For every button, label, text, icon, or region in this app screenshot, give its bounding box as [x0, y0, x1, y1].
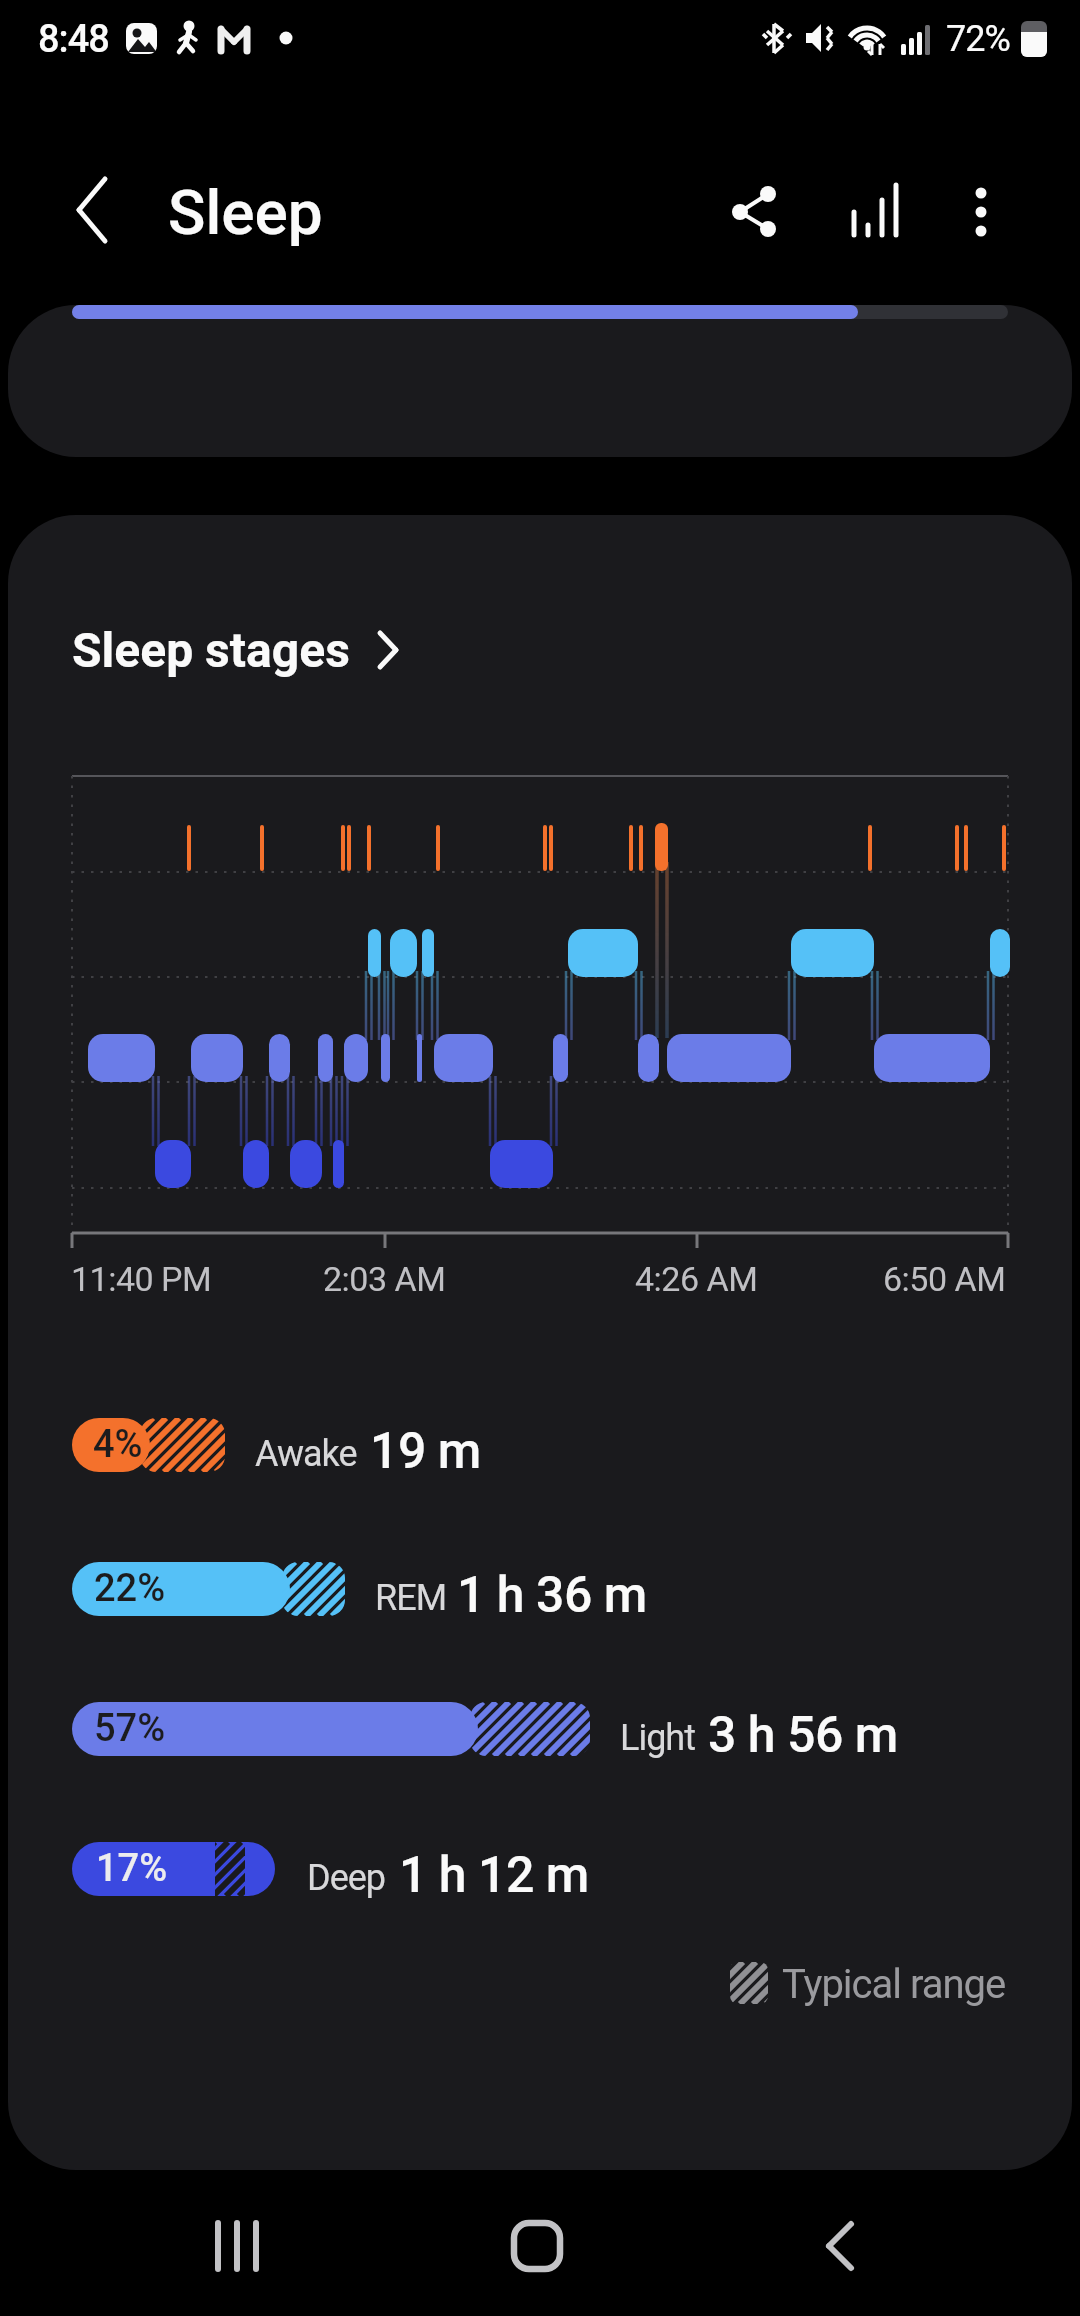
staticText: 11:40 PM — [71, 1259, 212, 1299]
button[interactable] — [170, 2196, 300, 2296]
button[interactable] — [472, 2196, 602, 2296]
staticText: 6:50 AM — [883, 1259, 1006, 1299]
staticText: 1 h 36 m — [457, 1566, 647, 1625]
button[interactable] — [8, 305, 1072, 457]
staticText: 1 h 12 m — [399, 1846, 589, 1905]
button[interactable] — [835, 170, 915, 250]
staticText: 17% — [96, 1846, 168, 1891]
staticText: 3 h 56 m — [708, 1706, 898, 1765]
button[interactable] — [945, 165, 1015, 255]
button[interactable] — [715, 170, 795, 250]
staticText: 72% — [946, 18, 1010, 60]
staticText: 57% — [94, 1706, 166, 1751]
staticText: 4:26 AM — [635, 1259, 758, 1299]
staticText: Sleep stages — [72, 622, 350, 678]
staticText: Typical range — [782, 1961, 1006, 2008]
staticText: REM — [375, 1577, 447, 1619]
staticText: 2:03 AM — [323, 1259, 446, 1299]
staticText: Awake — [255, 1433, 357, 1475]
staticText: Light — [620, 1717, 695, 1759]
staticText: 19 m — [370, 1422, 481, 1481]
button[interactable] — [55, 165, 135, 255]
staticText: Sleep — [168, 176, 323, 249]
staticText: Deep — [307, 1857, 386, 1899]
staticText: 8:48 — [38, 17, 109, 62]
button[interactable] — [775, 2196, 905, 2296]
button[interactable]: Sleep stages — [60, 612, 420, 688]
staticText: 4% — [93, 1422, 143, 1467]
staticText: 22% — [94, 1566, 166, 1611]
